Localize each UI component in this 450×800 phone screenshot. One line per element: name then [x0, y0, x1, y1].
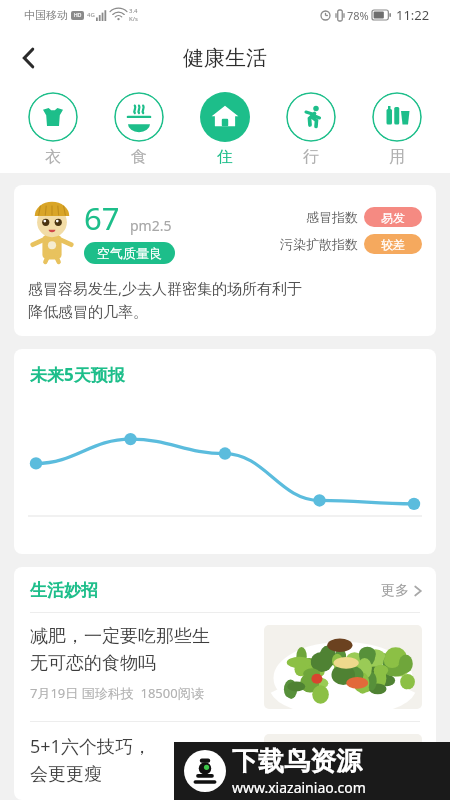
staticText: 空气质量良: [97, 245, 162, 261]
staticText: 3.4: [129, 7, 138, 15]
button[interactable]: 行: [268, 85, 354, 173]
staticText: 食: [131, 147, 147, 167]
button[interactable]: 住: [182, 85, 268, 173]
staticText: 感冒容易发生,少去人群密集的场所有利于 降低感冒的几率。: [28, 278, 303, 322]
button[interactable]: Back: [6, 36, 50, 80]
button[interactable]: 衣: [10, 85, 96, 173]
staticText: 污染扩散指数: [280, 236, 358, 252]
staticText: 下载鸟资源: [232, 745, 362, 778]
staticText: 更多: [381, 582, 409, 600]
staticText: 4G: [87, 11, 95, 19]
staticText: HD: [74, 12, 82, 19]
staticText: pm2.5: [130, 216, 172, 235]
staticText: 减肥，一定要吃那些生 无可恋的食物吗: [30, 625, 210, 675]
staticText: 5+1六个技巧， 会更更瘦: [30, 734, 151, 786]
staticText: 感冒指数: [306, 209, 358, 225]
button[interactable]: 食: [96, 85, 182, 173]
staticText: K/s: [129, 15, 138, 23]
staticText: 未来5天预报: [30, 363, 125, 386]
staticText: 7月19日 国珍科技 18500阅读: [30, 684, 204, 702]
button[interactable]: 生活妙招: [14, 567, 436, 800]
button[interactable]: 未来5天预报: [14, 349, 436, 554]
staticText: 易发: [381, 210, 405, 225]
button[interactable]: 更多: [381, 582, 422, 600]
staticText: 住: [217, 147, 233, 167]
staticText: www.xiazainiao.com: [232, 778, 366, 797]
staticText: 用: [389, 147, 405, 167]
button[interactable]: 用: [354, 85, 440, 173]
staticText: 中国移动: [24, 8, 68, 22]
staticText: 78%: [347, 8, 369, 23]
button[interactable]: 5+1六个技巧， 会更更瘦: [14, 722, 436, 800]
staticText: 67: [84, 197, 120, 239]
button[interactable]: 67: [14, 185, 436, 336]
staticText: 生活妙招: [30, 580, 98, 601]
staticText: 11:22: [396, 6, 430, 24]
staticText: 衣: [45, 147, 61, 167]
staticText: 较差: [381, 237, 405, 252]
staticText: 行: [303, 147, 319, 167]
staticText: 健康生活: [183, 45, 267, 71]
button[interactable]: 减肥，一定要吃那些生 无可恋的食物吗: [14, 613, 436, 721]
